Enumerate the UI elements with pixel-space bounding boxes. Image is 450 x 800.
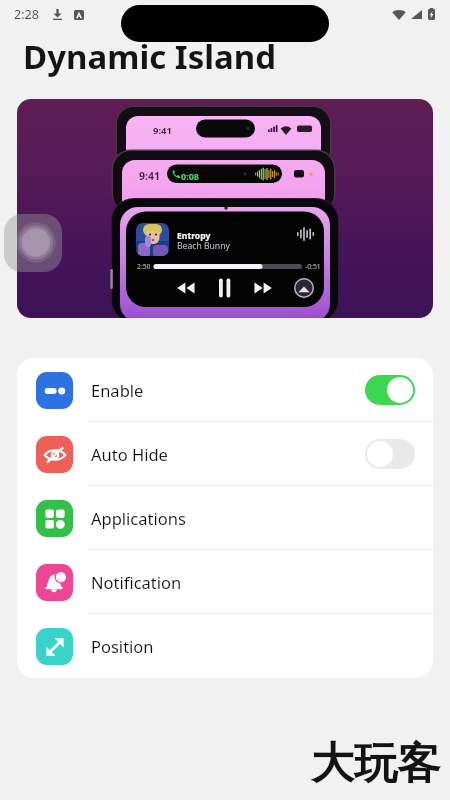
staticText: 大玩客	[311, 737, 440, 791]
button[interactable]: Floating bubble	[4, 214, 62, 272]
staticText: 2:28	[14, 6, 39, 23]
button[interactable]: Toggle on	[365, 375, 415, 405]
button[interactable]: Toggle off	[365, 439, 415, 469]
staticText: 0:08	[181, 170, 199, 182]
staticText: Position	[91, 635, 154, 657]
staticText: Notification	[91, 571, 182, 593]
button[interactable]: Applications	[17, 486, 433, 550]
button[interactable]: 9:41	[17, 99, 433, 318]
staticText: Auto Hide	[91, 443, 168, 465]
staticText: Beach Bunny	[177, 240, 230, 252]
button[interactable]: Notification	[17, 550, 433, 614]
staticText: 2:50	[137, 262, 151, 271]
staticText: -0:51	[305, 262, 321, 271]
staticText: Entropy	[177, 230, 211, 242]
staticText: 9:41	[153, 124, 172, 137]
button[interactable]: Position	[17, 614, 433, 678]
staticText: Dynamic Island	[23, 34, 277, 79]
staticText: Enable	[91, 379, 144, 401]
button[interactable]: Enable	[17, 358, 433, 422]
staticText: 9:41	[139, 169, 160, 183]
button[interactable]: Auto Hide	[17, 422, 433, 486]
staticText: Applications	[91, 507, 186, 529]
